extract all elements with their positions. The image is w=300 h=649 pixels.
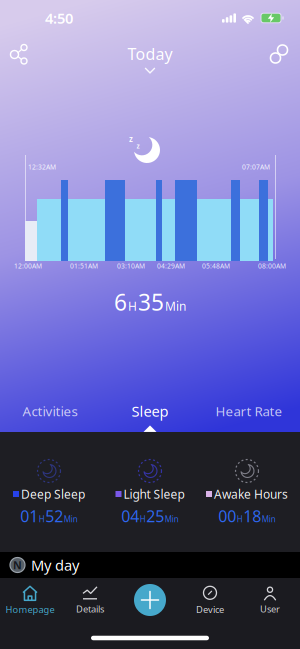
button[interactable]: Homepage	[2, 584, 58, 618]
button[interactable]	[269, 44, 288, 64]
staticText: 08:00AM	[258, 262, 286, 270]
button[interactable]: Sleep	[100, 397, 200, 425]
staticText: 18	[243, 505, 261, 527]
staticText: Min	[262, 514, 276, 524]
button[interactable]: Details	[62, 584, 118, 618]
button[interactable]	[9, 43, 29, 65]
staticText: My day	[31, 555, 79, 575]
staticText: User	[260, 603, 280, 615]
staticText: 12:32AM	[28, 163, 56, 171]
staticText: 12:00AM	[14, 262, 42, 270]
staticText: H	[39, 514, 45, 524]
button[interactable]: Heart Rate	[199, 397, 299, 425]
staticText: Activities	[22, 402, 77, 420]
staticText: Today	[127, 43, 172, 64]
button[interactable]: N	[0, 552, 300, 578]
staticText: z	[136, 142, 139, 150]
staticText: Min	[165, 298, 186, 314]
staticText: H	[140, 514, 146, 524]
staticText: Deep Sleep	[21, 486, 85, 502]
staticText: 03:10AM	[117, 262, 145, 270]
staticText: Light Sleep	[123, 486, 184, 502]
staticText: Details	[76, 603, 104, 615]
staticText: Device	[196, 603, 224, 616]
staticText: Sleep	[131, 401, 168, 421]
staticText: Heart Rate	[215, 402, 282, 420]
staticText: 04	[121, 505, 139, 527]
staticText: 01:51AM	[70, 262, 98, 270]
staticText: Awake Hours	[214, 486, 288, 502]
staticText: Homepage	[5, 603, 54, 616]
button[interactable]	[133, 583, 167, 617]
staticText: 52	[45, 505, 63, 527]
staticText: 25	[146, 505, 164, 527]
staticText: H	[128, 298, 137, 314]
staticText: H	[237, 514, 243, 524]
button[interactable]: Today	[127, 43, 172, 73]
staticText: 07:07AM	[242, 163, 270, 171]
staticText: 6	[114, 287, 127, 317]
staticText: 00	[218, 505, 236, 527]
staticText: z	[129, 134, 133, 144]
staticText: 4:50	[45, 8, 73, 28]
staticText: 35	[138, 287, 164, 317]
button[interactable]: User	[242, 584, 298, 618]
staticText: 05:48AM	[202, 262, 230, 270]
staticText: Min	[64, 514, 78, 524]
staticText: 04:29AM	[157, 262, 185, 270]
staticText: Min	[165, 514, 179, 524]
staticText: N	[13, 558, 22, 572]
button[interactable]: Device	[182, 584, 238, 618]
staticText: 01	[20, 505, 38, 527]
button[interactable]: Activities	[0, 397, 100, 425]
